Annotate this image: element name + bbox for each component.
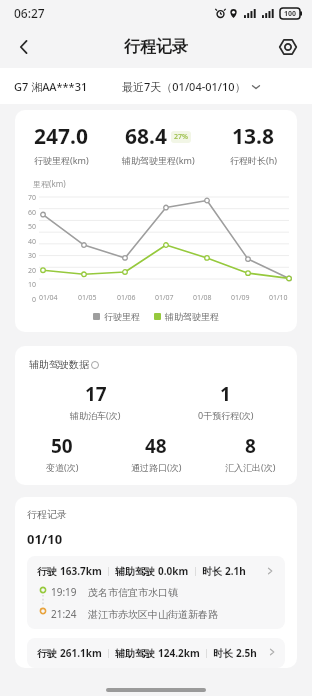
- staticText: 01/10: [27, 530, 63, 548]
- staticText: 0干预行程(次): [198, 409, 254, 421]
- staticText: 50: [15, 222, 36, 232]
- staticText: 辅助驾驶里程: [165, 311, 219, 322]
- staticText: 行程时长(h): [230, 154, 277, 166]
- staticText: 辅助泊车(次): [70, 409, 121, 421]
- button[interactable]: G7 湘AA***31: [14, 79, 88, 94]
- staticText: 行程记录: [124, 37, 188, 57]
- staticText: 辅助驾驶: [115, 564, 158, 578]
- staticText: 行驶里程: [104, 311, 140, 322]
- staticText: 247.0: [34, 122, 88, 151]
- staticText: 行驶: [37, 646, 60, 660]
- staticText: 30: [15, 251, 36, 261]
- staticText: 最近7天（01/04-01/10）: [122, 79, 246, 94]
- staticText: 时长: [202, 564, 225, 578]
- staticText: 湛江市赤坎区中山街道新春路: [88, 608, 218, 621]
- staticText: 时长: [213, 646, 236, 660]
- staticText: 0: [15, 295, 36, 305]
- staticText: 行驶里程(km): [34, 154, 89, 166]
- button[interactable]: 辅助驾驶数据: [29, 358, 99, 371]
- staticText: 70: [15, 193, 36, 203]
- staticText: 变道(次): [46, 461, 79, 473]
- staticText: 里程(km): [33, 178, 66, 189]
- staticText: 40: [15, 237, 36, 247]
- staticText: 68.4: [125, 122, 167, 151]
- staticText: 辅助驾驶数据: [29, 358, 89, 371]
- staticText: 行程记录: [27, 508, 67, 521]
- staticText: 01/07: [155, 293, 174, 303]
- staticText: 2.1h: [225, 564, 246, 578]
- staticText: 行驶: [37, 564, 60, 578]
- staticText: 100: [284, 9, 297, 19]
- staticText: 辅助驾驶: [115, 646, 158, 660]
- staticText: 2.5h: [236, 646, 257, 660]
- staticText: 01/09: [231, 293, 250, 303]
- staticText: 17: [85, 381, 107, 407]
- staticText: 06:27: [14, 5, 45, 21]
- staticText: 通过路口(次): [131, 461, 182, 473]
- staticText: 01/08: [193, 293, 212, 303]
- staticText: 茂名市信宜市水口镇: [88, 586, 178, 599]
- staticText: 13.8: [232, 122, 274, 151]
- staticText: 163.7km: [60, 564, 102, 578]
- staticText: 48: [145, 433, 167, 459]
- staticText: 124.2km: [158, 646, 200, 660]
- staticText: 1: [220, 381, 231, 407]
- staticText: 27%: [174, 132, 188, 142]
- button[interactable]: 行驶: [27, 638, 285, 668]
- staticText: 50: [51, 433, 73, 459]
- staticText: 19:19: [51, 585, 77, 599]
- staticText: 8: [245, 433, 256, 459]
- staticText: 10: [15, 280, 36, 290]
- staticText: 60: [15, 208, 36, 218]
- staticText: 20: [15, 266, 36, 276]
- staticText: 21:24: [51, 607, 77, 621]
- staticText: 辅助驾驶里程(km): [122, 154, 195, 166]
- staticText: G7 湘AA***31: [14, 79, 88, 94]
- button[interactable]: 最近7天（01/04-01/10）: [122, 79, 261, 94]
- staticText: 01/10: [269, 293, 288, 303]
- staticText: 汇入汇出(次): [225, 461, 276, 473]
- staticText: 261.1km: [60, 646, 102, 660]
- staticText: 0.0km: [158, 564, 189, 578]
- button[interactable]: Back: [6, 29, 42, 65]
- staticText: 01/05: [78, 293, 97, 303]
- staticText: 01/06: [117, 293, 136, 303]
- button[interactable]: Settings: [270, 29, 306, 65]
- button[interactable]: 行驶: [27, 556, 285, 629]
- staticText: 01/04: [39, 293, 58, 303]
